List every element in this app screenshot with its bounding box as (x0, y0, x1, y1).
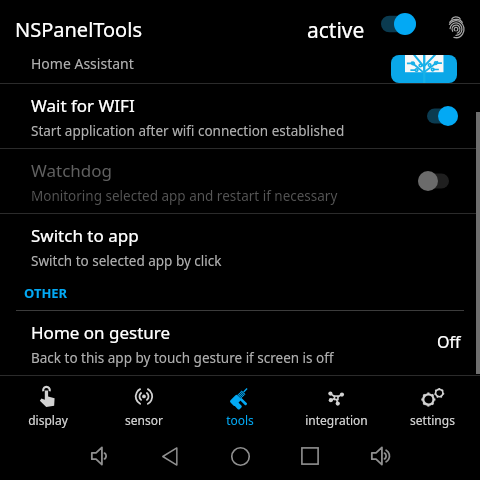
staticText: tools (226, 412, 254, 428)
staticText: OTHER (24, 284, 68, 302)
button[interactable]: Volume up (364, 439, 398, 473)
button[interactable]: Home on gesture (0, 311, 480, 375)
button[interactable]: Home (223, 439, 257, 473)
staticText: Start application after wifi connection … (31, 122, 345, 140)
staticText: Home on gesture (31, 321, 171, 344)
button[interactable]: Active toggle (375, 5, 422, 43)
staticText: display (28, 412, 68, 428)
button[interactable]: Wait for WIFI (0, 84, 480, 148)
button[interactable]: Recents (293, 439, 327, 473)
button[interactable]: tools (192, 376, 288, 428)
button[interactable]: Watchdog toggle (411, 161, 455, 201)
button[interactable]: sensor (96, 376, 192, 428)
button[interactable]: Fingerprint (440, 14, 472, 40)
staticText: Switch to app (31, 224, 139, 247)
button[interactable]: Switch to app (0, 214, 480, 278)
staticText: integration (305, 412, 368, 428)
staticText: NSPanelTools (15, 16, 142, 43)
staticText: Wait for WIFI (31, 94, 135, 117)
button[interactable]: Volume down (84, 439, 118, 473)
button[interactable]: integration (288, 376, 384, 428)
staticText: Monitoring selected app and restart if n… (31, 187, 338, 205)
button[interactable]: Wait for WIFI toggle (420, 96, 464, 136)
staticText: Watchdog (31, 159, 113, 182)
staticText: Home Assistant (31, 54, 134, 73)
button[interactable]: Home Assistant (0, 48, 480, 83)
button[interactable]: settings (384, 376, 480, 428)
button[interactable]: display (0, 376, 96, 428)
button[interactable]: Watchdog (0, 149, 480, 213)
staticText: Back to this app by touch gesture if scr… (31, 349, 334, 367)
staticText: active (307, 16, 365, 45)
button[interactable]: Back (153, 439, 187, 473)
staticText: Off (437, 331, 461, 353)
staticText: sensor (125, 412, 163, 428)
staticText: settings (410, 412, 455, 428)
staticText: Switch to selected app by click (31, 252, 222, 270)
